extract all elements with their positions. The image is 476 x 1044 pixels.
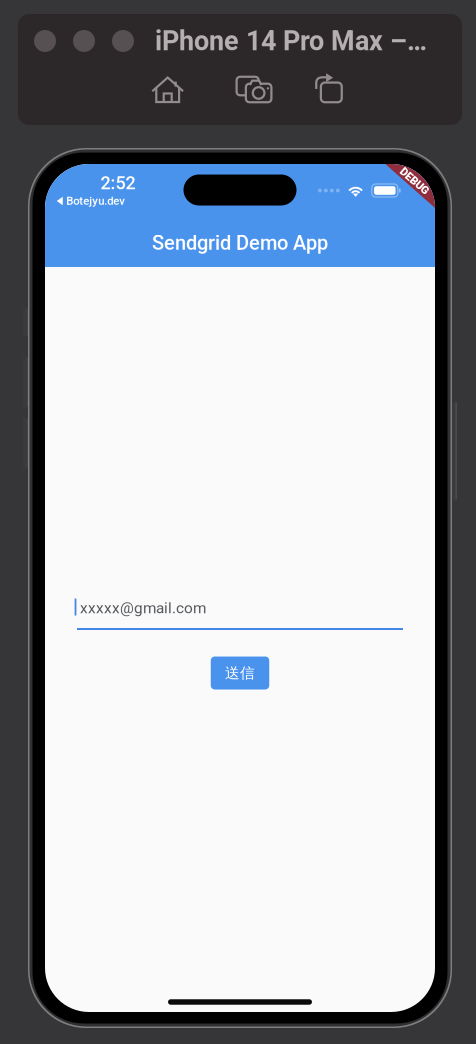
button[interactable]: 送信: [211, 656, 269, 689]
staticText: 送信: [225, 664, 255, 682]
staticText: xxxxx@gmail.com: [80, 599, 206, 617]
button[interactable]: Zoom: [112, 30, 134, 52]
button[interactable]: Home: [152, 76, 184, 103]
staticText: Sendgrid Demo App: [152, 231, 328, 255]
button[interactable]: Rotate: [315, 75, 343, 103]
staticText: Botejyu.dev: [66, 194, 125, 208]
button[interactable]: Close: [34, 30, 56, 52]
button[interactable]: Minimize: [73, 30, 95, 52]
staticText: iPhone 14 Pro Max –…: [155, 25, 427, 57]
button[interactable]: Screenshot: [236, 75, 271, 103]
staticText: 2:52: [100, 172, 135, 194]
staticText: DEBUG: [397, 175, 431, 187]
